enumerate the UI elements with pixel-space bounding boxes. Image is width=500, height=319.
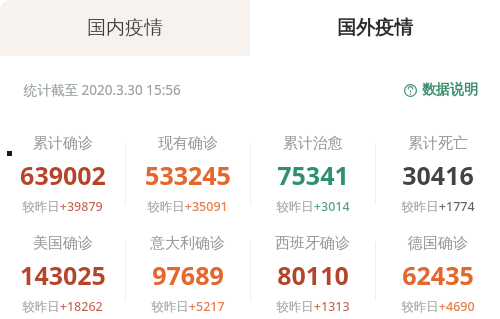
staticText: 较昨日+35091 [147,198,228,215]
staticText: 较昨日+1774 [401,198,475,215]
button[interactable]: 现有确诊 [125,124,250,224]
staticText: 国外疫情 [337,16,413,40]
staticText: 数据说明 [422,81,478,99]
staticText: 较昨日+39879 [22,198,103,215]
staticText: 639002 [20,158,106,192]
staticText: 97689 [152,258,224,292]
button[interactable]: 意大利确诊 [125,224,250,319]
button[interactable]: 累计治愈 [250,124,375,224]
staticText: 意大利确诊 [150,234,225,253]
staticText: 美国确诊 [33,234,93,253]
staticText: 现有确诊 [158,134,218,153]
button[interactable]: 国外疫情 [250,0,500,56]
button[interactable]: 美国确诊 [0,224,125,319]
button[interactable]: 国内疫情 [0,0,250,56]
staticText: 30416 [402,158,474,192]
staticText: 累计治愈 [283,134,343,153]
staticText: 较昨日+3014 [276,198,350,215]
staticText: 国内疫情 [87,16,163,40]
button[interactable]: 累计死亡 [375,124,500,224]
staticText: 累计确诊 [33,134,93,153]
staticText: 533245 [145,158,231,192]
button[interactable]: 累计确诊 [0,124,125,224]
staticText: 62435 [402,258,474,292]
staticText: 较昨日+5217 [151,298,225,315]
staticText: 80110 [277,258,349,292]
staticText: 德国确诊 [408,234,468,253]
staticText: 75341 [277,158,349,192]
staticText: 统计截至 2020.3.30 15:56 [24,81,181,99]
staticText: 累计死亡 [408,134,468,153]
staticText: 较昨日+18262 [22,298,103,315]
button[interactable]: 德国确诊 [375,224,500,319]
button[interactable]: 西班牙确诊 [250,224,375,319]
staticText: 西班牙确诊 [275,234,350,253]
staticText: 较昨日+1313 [276,298,350,315]
button[interactable]: 数据说明 [404,81,478,99]
staticText: 较昨日+4690 [401,298,475,315]
staticText: 143025 [20,258,106,292]
